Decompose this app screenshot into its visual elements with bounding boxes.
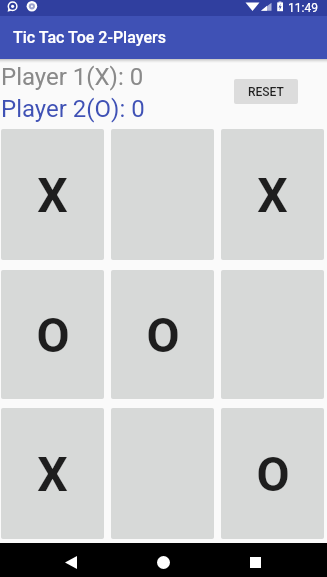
button[interactable]: O (1, 270, 104, 399)
button[interactable]: Home (147, 546, 180, 577)
button[interactable]: X (1, 129, 104, 260)
staticText: X (257, 167, 288, 223)
button[interactable]: RESET (234, 79, 298, 104)
button[interactable]: X (221, 129, 324, 260)
button[interactable]: O (111, 270, 214, 399)
button[interactable]: Recents (239, 546, 272, 577)
staticText: 11:49 (288, 1, 318, 15)
button[interactable]: Back (54, 546, 87, 577)
staticText: RESET (248, 85, 284, 99)
staticText: O (146, 307, 180, 363)
staticText: X (37, 167, 68, 223)
button[interactable]: O (221, 408, 324, 539)
staticText: Tic Tac Toe 2-Players (13, 28, 166, 47)
staticText: O (36, 307, 70, 363)
staticText: O (256, 446, 290, 502)
staticText: Player 1(X): 0 (1, 63, 144, 91)
staticText: Player 2(O): 0 (1, 95, 145, 123)
staticText: X (37, 446, 68, 502)
button[interactable]: X (1, 408, 104, 539)
